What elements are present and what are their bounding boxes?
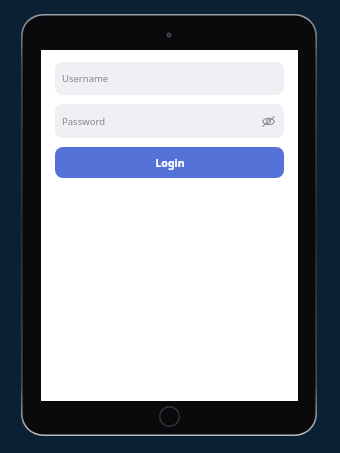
other: Home	[159, 406, 180, 427]
button[interactable]: Login	[55, 147, 284, 178]
staticText: Password	[62, 115, 105, 128]
button[interactable]: Show password	[259, 112, 277, 130]
button[interactable]: Username	[55, 62, 284, 95]
button[interactable]: Password	[55, 104, 284, 138]
staticText: Login	[155, 156, 185, 170]
staticText: Username	[62, 72, 109, 85]
